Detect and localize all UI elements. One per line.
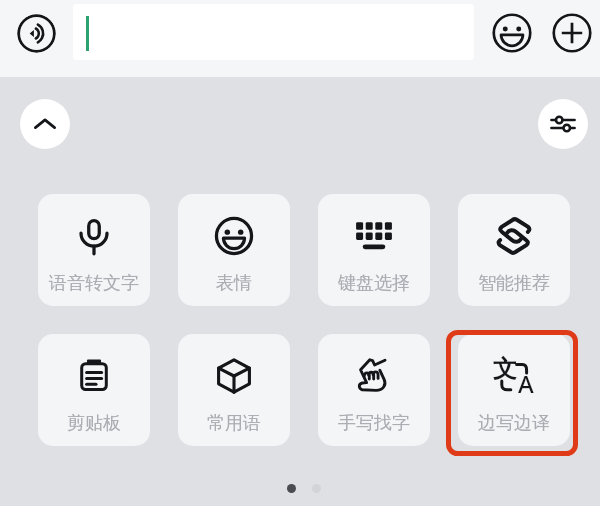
button[interactable]: 表情 xyxy=(178,194,290,306)
button[interactable]: 手写找字 xyxy=(318,334,430,446)
staticText: 语音转文字 xyxy=(49,272,139,295)
staticText: 文 xyxy=(493,354,517,384)
staticText: 智能推荐 xyxy=(478,272,550,295)
button[interactable] xyxy=(73,4,474,60)
button[interactable]: Settings xyxy=(538,99,588,149)
staticText: 键盘选择 xyxy=(338,272,410,295)
button[interactable]: Voice input xyxy=(17,14,56,53)
staticText: 剪贴板 xyxy=(67,412,121,435)
button[interactable]: 键盘选择 xyxy=(318,194,430,306)
button[interactable]: Collapse keyboard xyxy=(20,99,70,149)
staticText: 常用语 xyxy=(207,412,261,435)
button[interactable]: 剪贴板 xyxy=(38,334,150,446)
staticText: 手写找字 xyxy=(338,412,410,435)
button[interactable]: 文 xyxy=(458,334,570,446)
button[interactable]: 常用语 xyxy=(178,334,290,446)
button[interactable]: Emoji xyxy=(492,13,532,53)
staticText: 边写边译 xyxy=(478,412,550,435)
button[interactable]: 智能推荐 xyxy=(458,194,570,306)
staticText: 表情 xyxy=(216,272,252,295)
staticText: A xyxy=(518,367,534,400)
button[interactable]: 语音转文字 xyxy=(38,194,150,306)
button[interactable]: Add xyxy=(552,13,592,53)
